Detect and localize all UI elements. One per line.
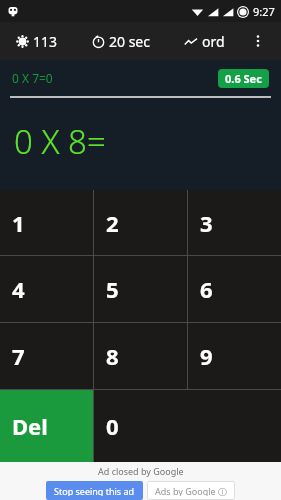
staticText: 9	[200, 341, 213, 371]
staticText: 0.6 Sec	[225, 71, 262, 86]
staticText: 1	[12, 208, 25, 238]
button[interactable]: 20 sec	[84, 28, 158, 55]
staticText: ord	[202, 32, 225, 51]
button[interactable]: 3	[188, 190, 281, 255]
button[interactable]: ord	[176, 28, 233, 55]
staticText: 3	[200, 208, 213, 238]
button[interactable]: Ads by Google ⓘ	[147, 481, 235, 500]
staticText: Ads by Google ⓘ	[155, 485, 227, 496]
button[interactable]: 0	[94, 390, 281, 462]
button[interactable]: Stop seeing this ad	[46, 481, 143, 500]
staticText: 7	[12, 341, 25, 371]
staticText: 4	[12, 274, 25, 304]
button[interactable]: 2	[94, 190, 187, 255]
button[interactable]: 0.6 Sec	[218, 69, 269, 88]
staticText: 5	[106, 274, 119, 304]
button[interactable]: 4	[0, 256, 93, 322]
button[interactable]: 6	[188, 256, 281, 322]
button[interactable]: More options	[243, 26, 273, 56]
staticText: 0 X 8=	[14, 119, 106, 164]
staticText: Ad closed by Google	[98, 465, 184, 477]
button[interactable]: 8	[94, 323, 187, 389]
staticText: 0	[106, 411, 119, 441]
staticText: Del	[12, 411, 48, 441]
staticText: 20 sec	[109, 32, 150, 51]
staticText: 2	[106, 208, 119, 238]
button[interactable]: Del	[0, 390, 93, 462]
staticText: Stop seeing this ad	[54, 485, 135, 496]
button[interactable]: 113	[8, 28, 66, 55]
button[interactable]: 7	[0, 323, 93, 389]
staticText: 8	[106, 341, 119, 371]
staticText: 113	[33, 32, 58, 51]
staticText: 6	[200, 274, 213, 304]
button[interactable]: 9	[188, 323, 281, 389]
button[interactable]: 5	[94, 256, 187, 322]
staticText: 9:27	[253, 4, 275, 19]
button[interactable]: 1	[0, 190, 93, 255]
staticText: 0 X 7=0	[12, 70, 53, 86]
